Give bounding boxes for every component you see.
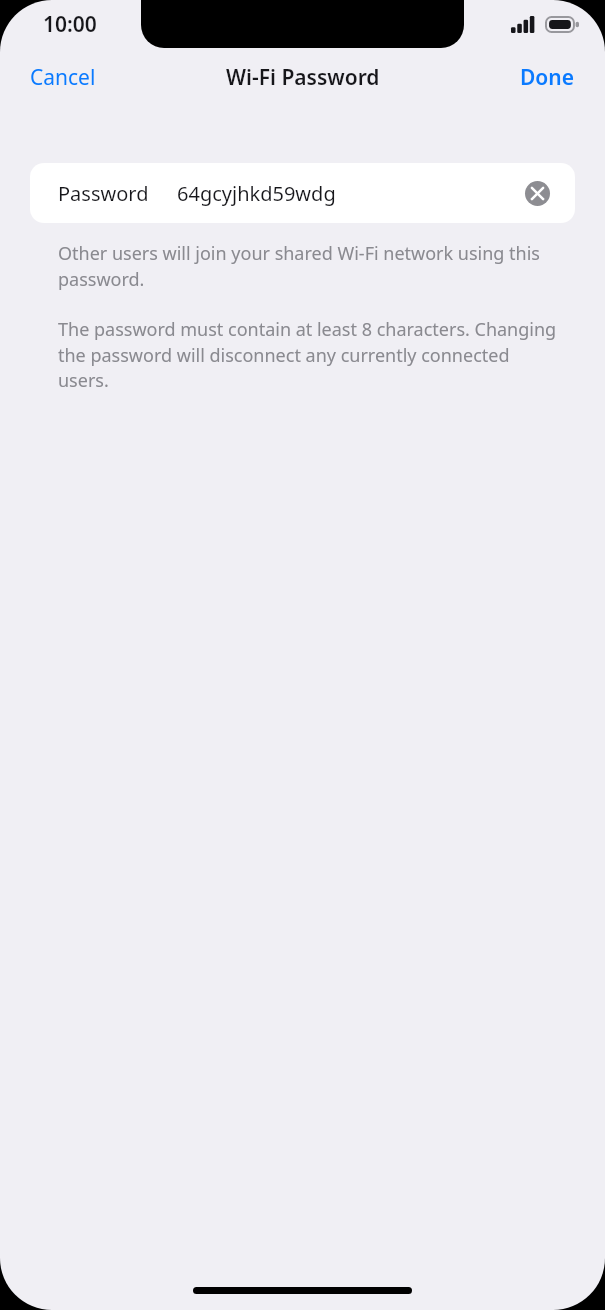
staticText: Password	[58, 180, 149, 207]
staticText: Cancel	[30, 63, 96, 92]
staticText: Done	[520, 63, 575, 92]
button[interactable]: Done	[490, 53, 605, 102]
button[interactable]: Password	[30, 163, 575, 223]
staticText: Other users will join your shared Wi-Fi …	[58, 241, 557, 291]
button[interactable]: Cancel	[0, 53, 126, 102]
staticText: Wi-Fi Password	[226, 63, 380, 92]
staticText: 64gcyjhkd59wdg	[177, 180, 522, 207]
staticText: The password must contain at least 8 cha…	[58, 317, 557, 392]
staticText: 10:00	[43, 10, 97, 39]
button[interactable]: Clear password	[522, 178, 552, 208]
